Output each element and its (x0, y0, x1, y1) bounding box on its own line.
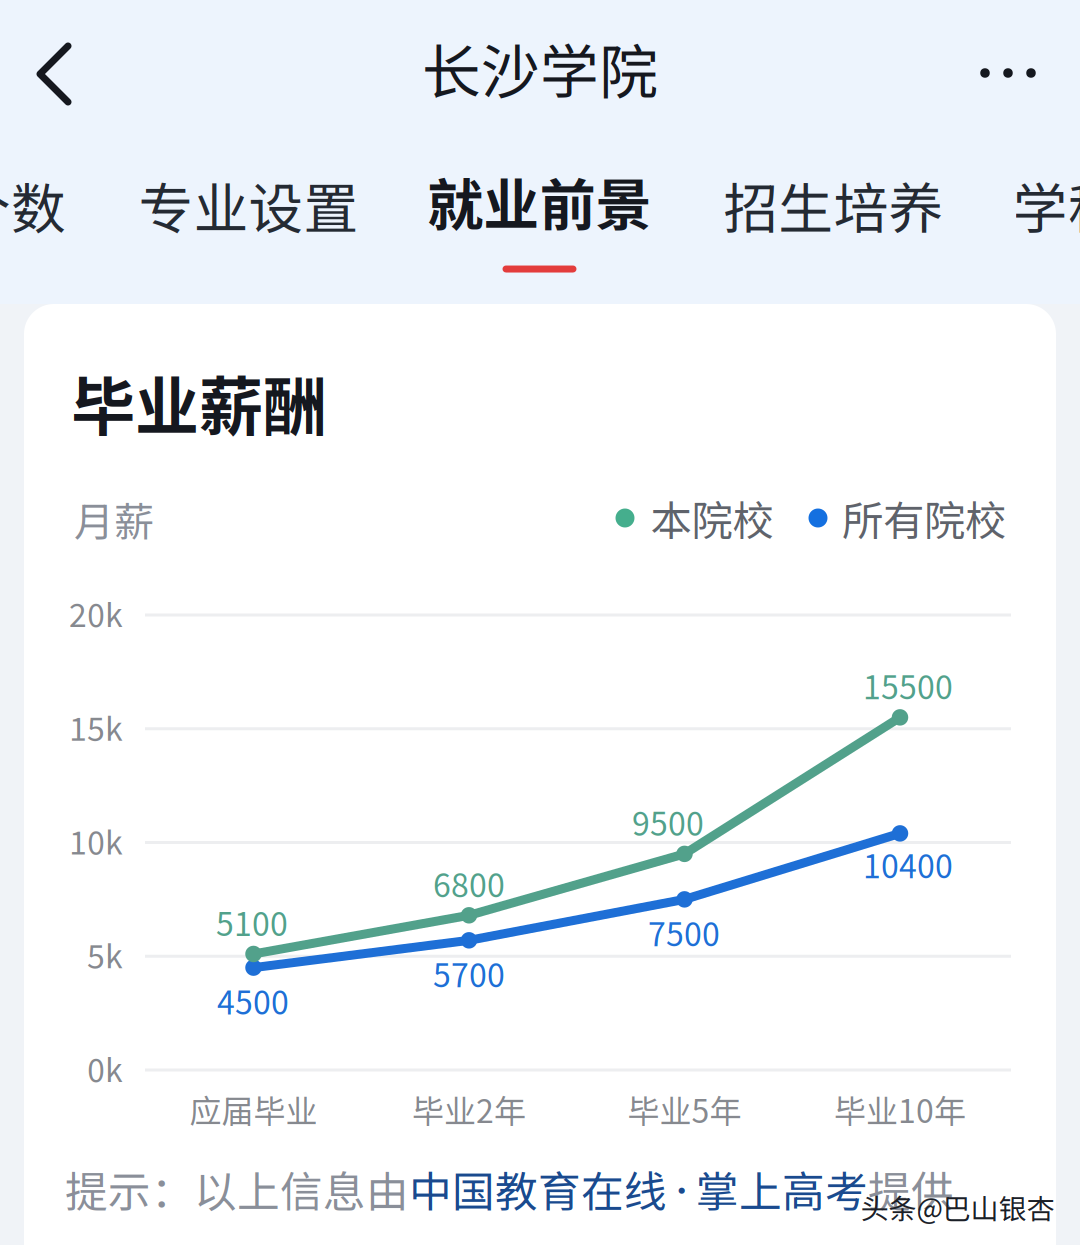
button[interactable]: Back (0, 0, 130, 148)
staticText: 毕业10年 (834, 1086, 966, 1132)
staticText: 15k (69, 704, 123, 750)
staticText: 提供 (868, 1158, 954, 1220)
staticText: 月薪 (74, 490, 154, 548)
staticText: 0k (87, 1045, 123, 1091)
staticText: 长沙学院 (422, 25, 658, 110)
staticText: 5k (87, 931, 123, 977)
button[interactable]: 就业前景 (409, 145, 669, 295)
staticText: 毕业薪酬 (71, 356, 327, 448)
staticText: 20k (69, 590, 123, 636)
staticText: 5700 (433, 950, 505, 996)
staticText: 15500 (863, 662, 953, 708)
button[interactable]: 个数 (0, 150, 78, 260)
staticText: 掌上高考 (696, 1158, 868, 1220)
staticText: 中国教育在线 (409, 1158, 667, 1220)
button[interactable]: 学科 (1013, 150, 1080, 260)
staticText: 专业设置 (138, 165, 358, 245)
staticText: 4500 (217, 977, 289, 1024)
staticText: 7500 (648, 909, 720, 955)
staticText: 5100 (216, 899, 288, 945)
staticText: 头条@巴山银杏 (860, 1187, 1054, 1227)
staticText: 应届毕业 (189, 1086, 317, 1132)
button[interactable]: 专业设置 (130, 150, 366, 260)
staticText: 本院校 (650, 488, 773, 548)
staticText: 9500 (632, 799, 704, 845)
staticText: 毕业2年 (412, 1086, 526, 1132)
staticText: 毕业5年 (627, 1086, 741, 1132)
staticText: · (667, 1168, 696, 1210)
staticText: 提示：以上信息由 (65, 1158, 409, 1220)
button[interactable]: More (942, 7, 1074, 139)
staticText: 6800 (433, 860, 505, 906)
staticText: 个数 (0, 165, 66, 245)
staticText: 就业前景 (427, 160, 651, 242)
staticText: 10400 (863, 841, 953, 887)
staticText: 学科 (1013, 165, 1080, 245)
staticText: 所有院校 (842, 488, 1006, 548)
staticText: 10k (69, 817, 123, 864)
staticText: 招生培养 (723, 165, 943, 245)
button[interactable]: 招生培养 (715, 150, 951, 260)
